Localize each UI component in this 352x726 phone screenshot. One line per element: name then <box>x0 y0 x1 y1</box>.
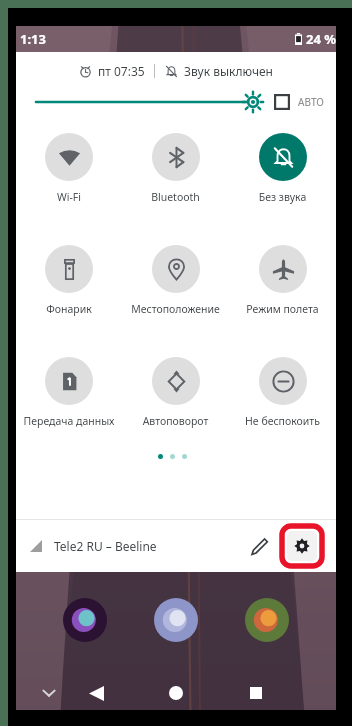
staticText: Передача данных <box>16 414 122 428</box>
button[interactable]: Brightness <box>36 89 264 115</box>
staticText: Автоповорот <box>122 414 229 428</box>
button[interactable]: АВТО <box>274 94 324 110</box>
button[interactable]: App <box>154 598 198 642</box>
button[interactable]: Hide keyboard <box>38 682 60 704</box>
staticText: 24 % <box>306 30 336 48</box>
staticText: Местоположение <box>122 302 229 316</box>
button[interactable]: Home <box>159 676 193 710</box>
button[interactable]: Wi-Fi <box>16 133 122 204</box>
button[interactable]: App <box>63 598 107 642</box>
button[interactable]: Фонарик <box>16 245 122 316</box>
button[interactable]: Передача данных <box>16 357 122 428</box>
staticText: АВТО <box>298 95 324 109</box>
button[interactable]: Settings <box>287 531 317 561</box>
staticText: Tele2 RU – Beeline <box>54 538 157 554</box>
button[interactable]: Не беспокоить <box>229 357 336 428</box>
staticText: Не беспокоить <box>229 414 336 428</box>
button[interactable]: Режим полета <box>229 245 336 316</box>
staticText: Режим полета <box>229 302 336 316</box>
button[interactable]: App <box>245 598 289 642</box>
staticText: Звук выключен <box>184 63 273 79</box>
button[interactable]: Bluetooth <box>122 133 229 204</box>
staticText: Без звука <box>229 190 336 204</box>
button[interactable]: Edit <box>242 529 276 563</box>
staticText: пт 07:35 <box>98 63 145 79</box>
button[interactable]: Recent apps <box>239 676 273 710</box>
button[interactable]: Tele2 RU – Beeline <box>30 538 157 554</box>
staticText: Bluetooth <box>122 190 229 204</box>
button[interactable]: Местоположение <box>122 245 229 316</box>
staticText: Фонарик <box>16 302 122 316</box>
staticText: Wi-Fi <box>16 190 122 204</box>
button[interactable]: Без звука <box>229 133 336 204</box>
button[interactable]: Back <box>79 676 113 710</box>
staticText: 1:13 <box>20 30 46 48</box>
button[interactable]: Автоповорот <box>122 357 229 428</box>
